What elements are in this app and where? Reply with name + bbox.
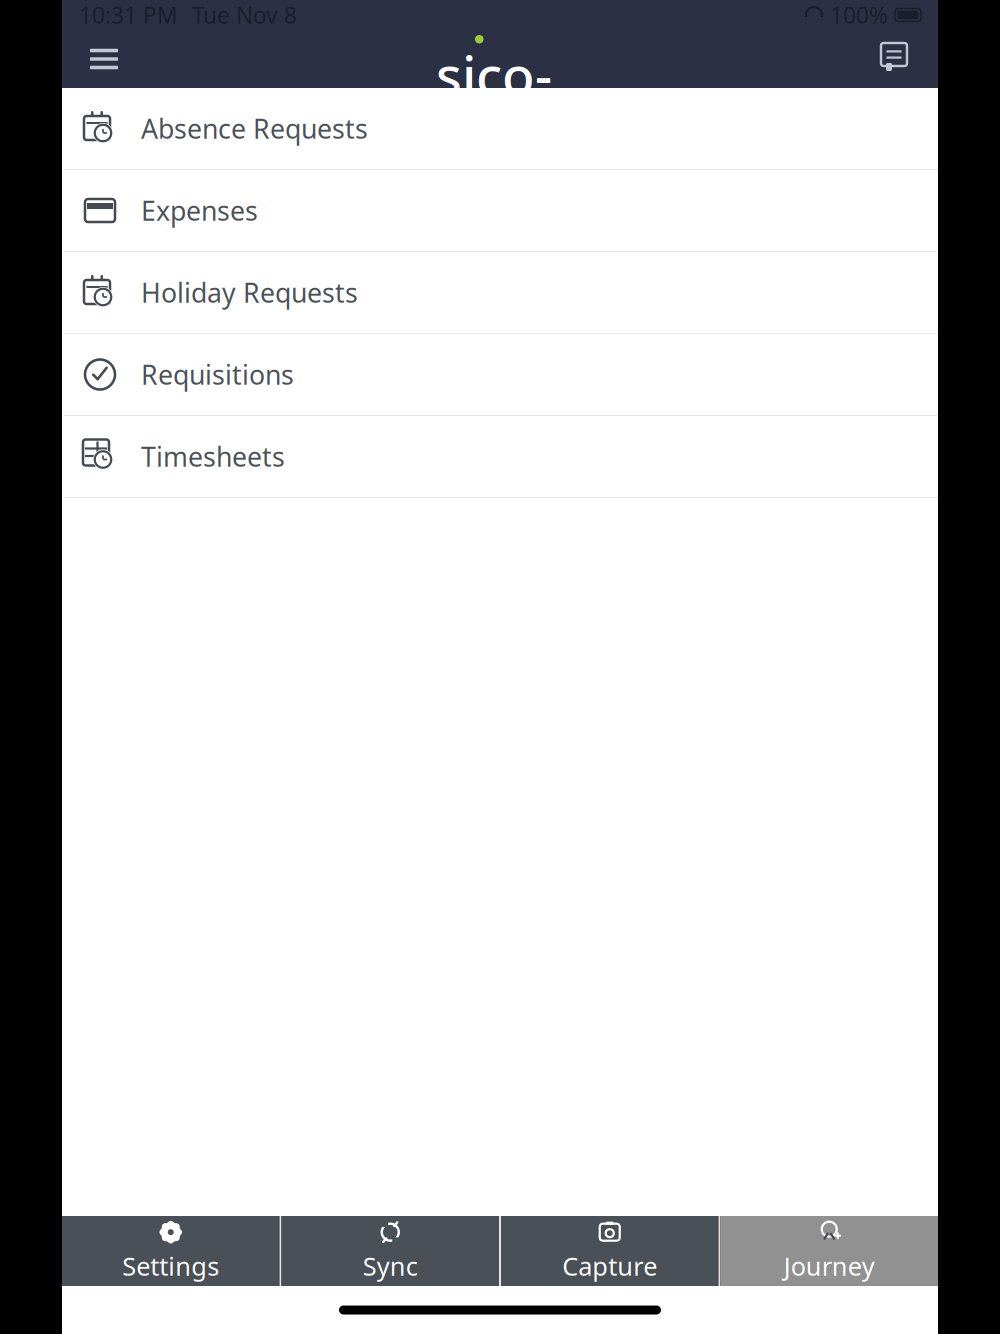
- button[interactable]: Timesheets: [62, 416, 938, 498]
- staticText: Absence Requests: [141, 111, 368, 146]
- staticText: Capture: [562, 1249, 657, 1283]
- button[interactable]: Holiday Requests: [62, 252, 938, 334]
- button[interactable]: Messages: [866, 30, 926, 88]
- staticText: Sync: [363, 1249, 418, 1283]
- staticText: Tue Nov 8: [192, 0, 297, 30]
- staticText: Timesheets: [141, 439, 285, 474]
- staticText: Requisitions: [141, 357, 294, 392]
- staticText: Settings: [122, 1249, 219, 1283]
- button[interactable]: Capture: [501, 1216, 718, 1286]
- button[interactable]: Sync: [281, 1216, 499, 1286]
- staticText: Expenses: [141, 193, 258, 228]
- staticText: Journey: [784, 1249, 875, 1283]
- staticText: 10:31 PM: [79, 0, 178, 30]
- staticText: Holiday Requests: [141, 275, 358, 310]
- button[interactable]: Settings: [62, 1216, 279, 1286]
- button[interactable]: Requisitions: [62, 334, 938, 416]
- button[interactable]: Journey: [720, 1216, 938, 1286]
- staticText: sicon: [436, 39, 552, 181]
- button[interactable]: Absence Requests: [62, 88, 938, 170]
- button[interactable]: Menu: [74, 30, 134, 88]
- staticText: 100%: [830, 0, 888, 30]
- button[interactable]: Expenses: [62, 170, 938, 252]
